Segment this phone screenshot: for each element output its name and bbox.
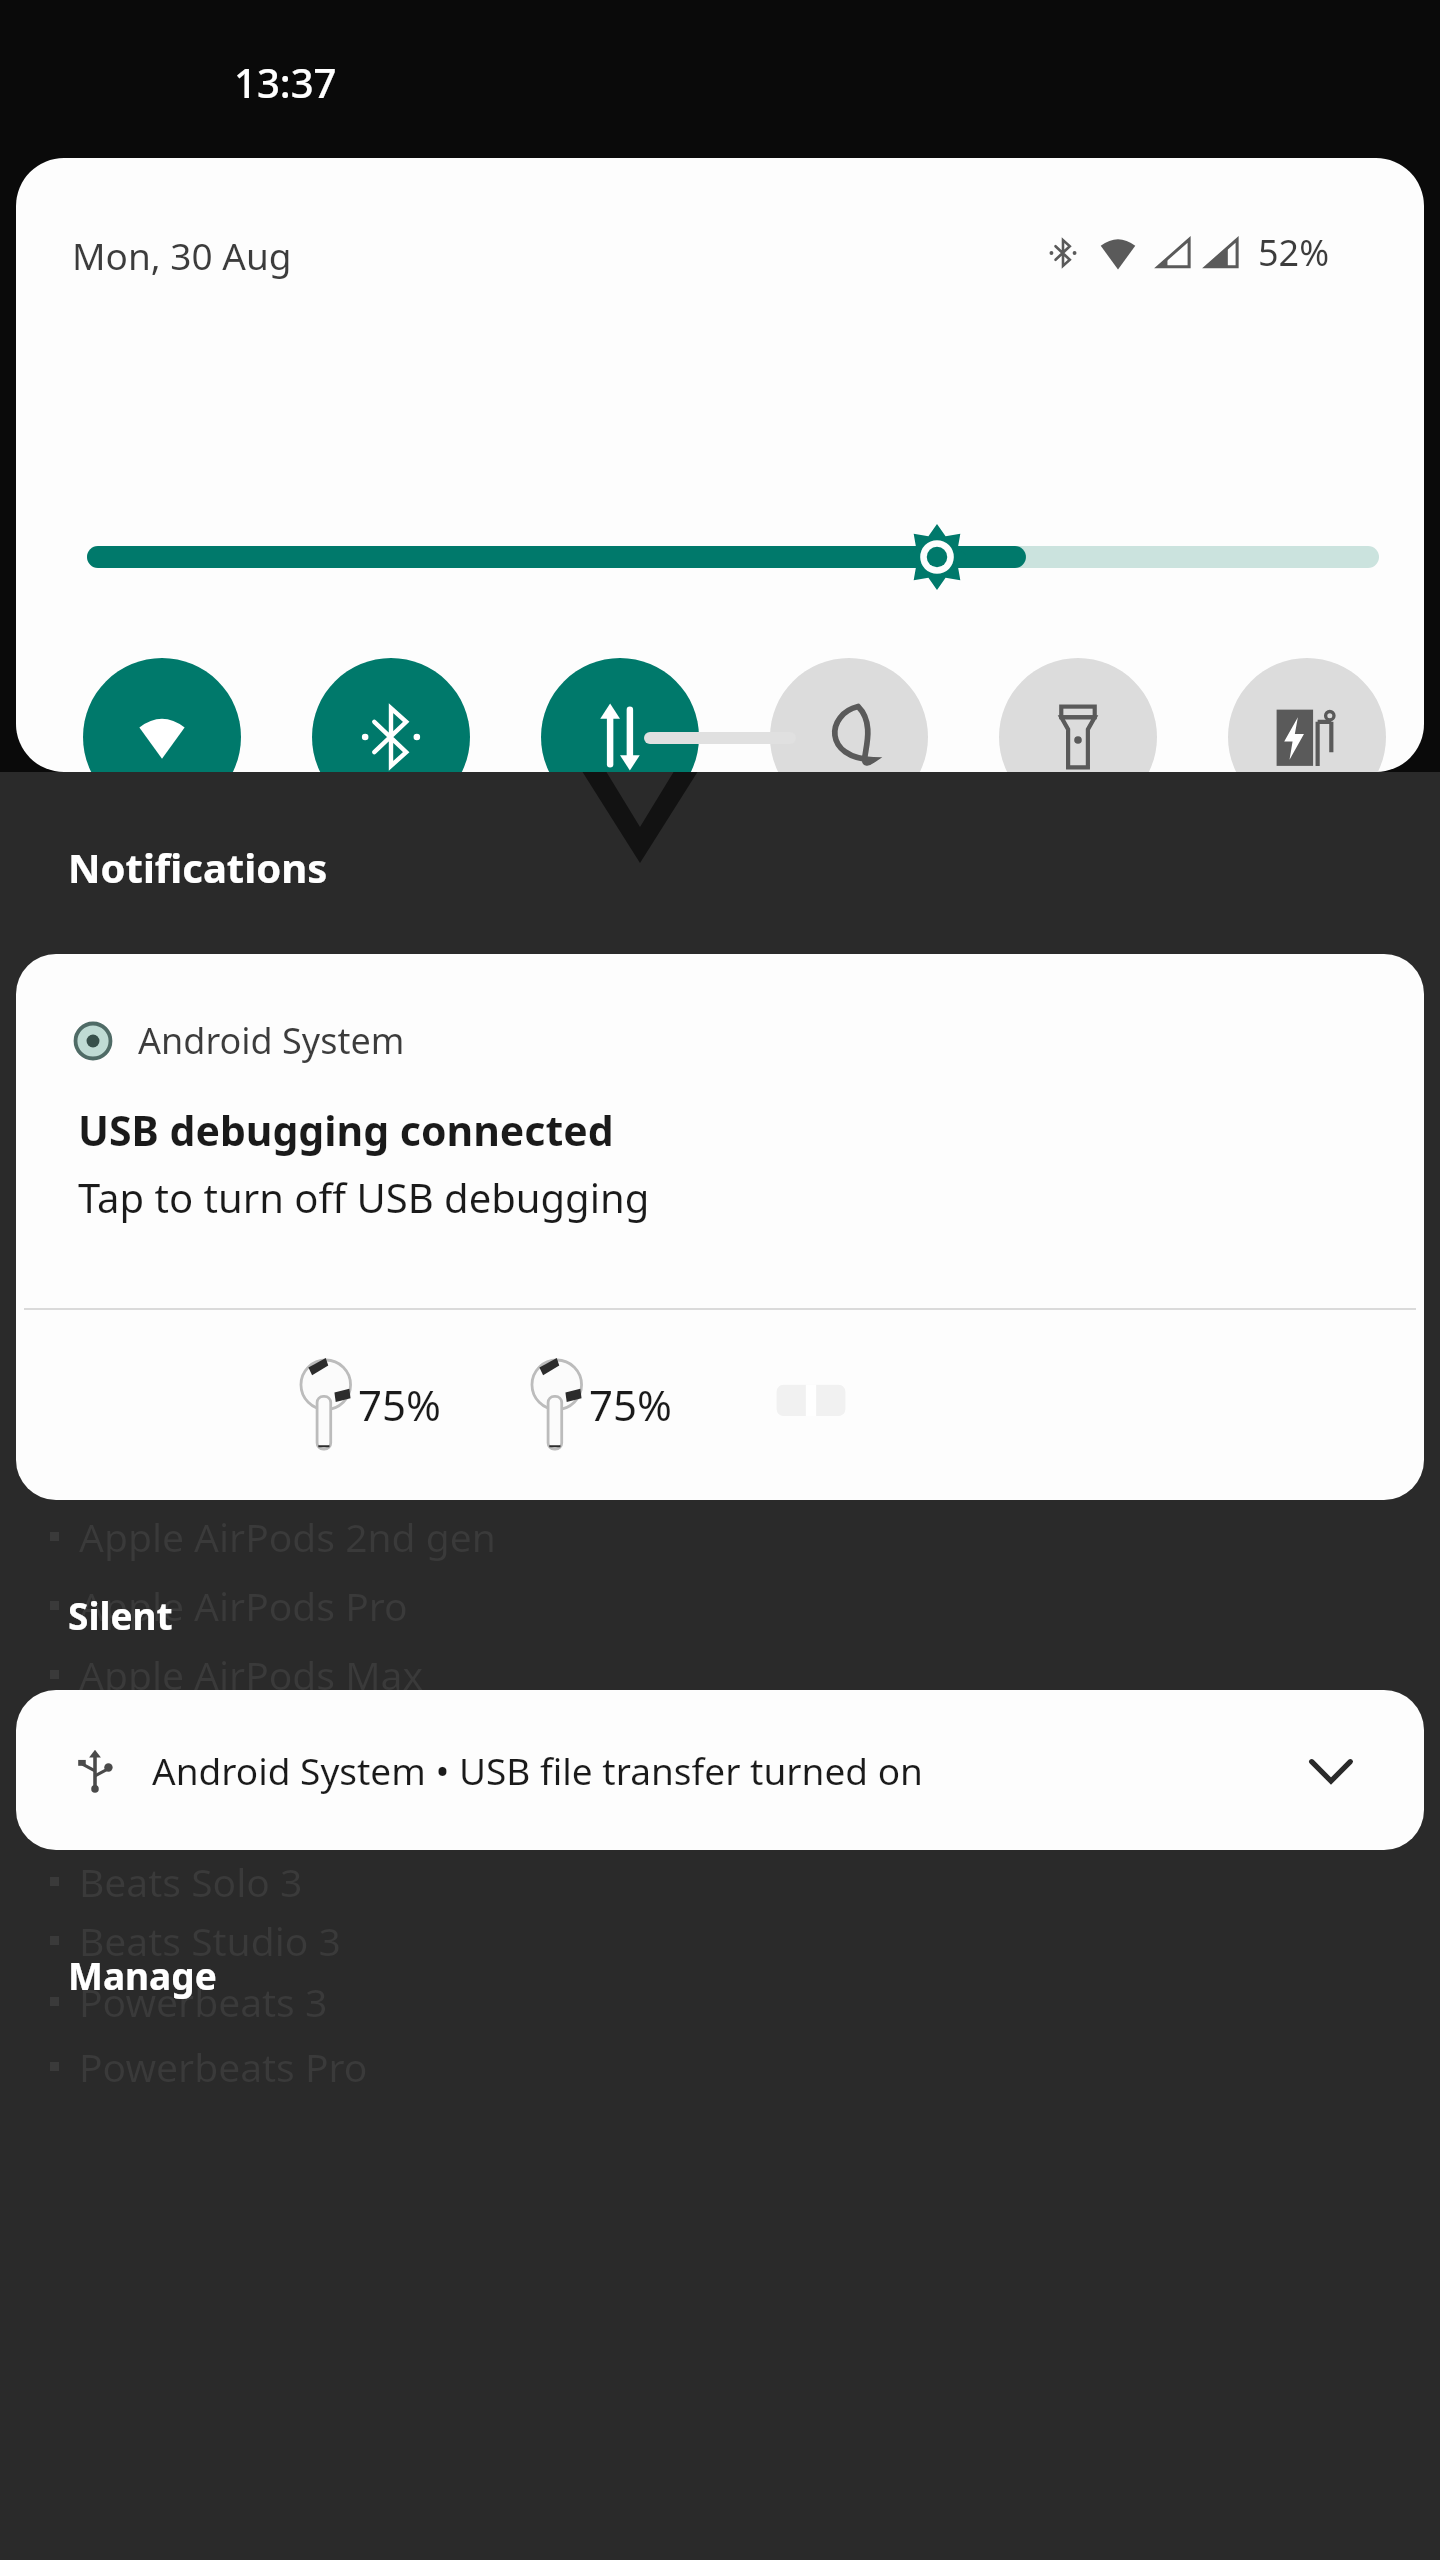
button[interactable]: Do Not Disturb xyxy=(770,658,928,772)
staticText: 75% xyxy=(358,1376,441,1433)
staticText: Beats Solo 3 xyxy=(79,1855,303,1908)
staticText: 75% xyxy=(589,1376,672,1433)
button[interactable]: Mobile data xyxy=(541,658,699,772)
other: Brightness xyxy=(904,524,970,590)
button[interactable] xyxy=(644,732,796,744)
staticText: Tap to turn off USB debugging xyxy=(78,1170,650,1224)
staticText: Notifications xyxy=(68,840,328,894)
button[interactable]: Expand xyxy=(1296,1735,1366,1805)
button[interactable]: Flashlight xyxy=(999,658,1157,772)
staticText: Android System xyxy=(138,1016,405,1065)
button[interactable]: Battery Saver xyxy=(1228,658,1386,772)
staticText: Silent xyxy=(68,1590,173,1640)
staticText: Apple AirPods Max xyxy=(79,1648,424,1701)
button[interactable] xyxy=(98,546,1368,568)
staticText: Apple AirPods 2nd gen xyxy=(79,1510,496,1563)
staticText: USB debugging connected xyxy=(78,1102,614,1158)
button[interactable]: Bluetooth xyxy=(312,658,470,772)
staticText: 52% xyxy=(1258,228,1330,277)
staticText: 13:37 xyxy=(234,55,337,109)
staticText: Beats Studio 3 xyxy=(79,1914,341,1967)
staticText: Android System • USB file transfer turne… xyxy=(152,1745,923,1795)
button[interactable]: Wi-Fi xyxy=(83,658,241,772)
staticText: Powerbeats Pro xyxy=(79,2040,368,2093)
staticText: Mon, 30 Aug xyxy=(72,230,292,280)
button[interactable]: Android System xyxy=(16,954,1424,1500)
staticText: Powerbeats 3 xyxy=(79,1975,328,2028)
staticText: Apple AirPods Pro xyxy=(79,1579,408,1632)
button[interactable]: Android System • USB file transfer turne… xyxy=(16,1690,1424,1850)
staticText: Manage xyxy=(68,1950,217,2000)
